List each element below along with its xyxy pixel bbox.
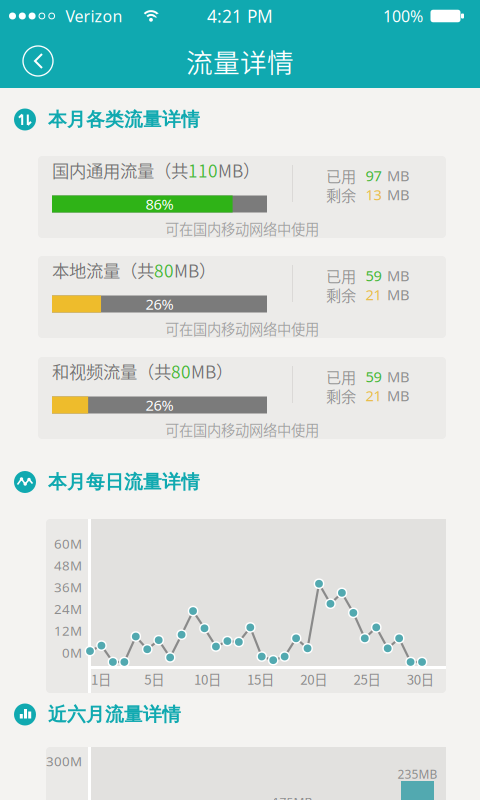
staticText: MB	[387, 285, 410, 304]
staticText: 国内通用流量（共	[52, 157, 188, 183]
staticText: 80	[171, 358, 191, 384]
staticText: 20日	[300, 669, 327, 689]
staticText: 13	[365, 185, 381, 204]
staticText: MB	[387, 367, 410, 386]
staticText: 和视频流量（共	[52, 358, 171, 384]
staticText: 26%	[145, 294, 173, 314]
staticText: 1日	[91, 669, 111, 689]
staticText: 175MB	[272, 794, 312, 800]
staticText: 本月每日流量详情	[48, 470, 200, 493]
staticText: 59	[365, 266, 381, 285]
staticText: MB）	[191, 358, 233, 384]
staticText: 25日	[353, 669, 380, 689]
staticText: 86%	[145, 194, 173, 214]
staticText: 21	[365, 285, 381, 304]
staticText: MB）	[218, 157, 260, 183]
staticText: 本地流量（共	[52, 257, 154, 283]
staticText: 300M	[46, 752, 82, 770]
staticText: 36M	[54, 578, 82, 596]
staticText: MB	[387, 166, 410, 185]
staticText: 已用	[326, 264, 356, 286]
staticText: MB	[387, 266, 410, 285]
staticText: 可在国内移动网络中使用	[165, 318, 319, 339]
staticText: 4:21 PM	[207, 4, 273, 27]
staticText: 5日	[144, 669, 164, 689]
staticText: 26%	[145, 395, 173, 415]
staticText: MB	[387, 185, 410, 204]
staticText: 15日	[247, 669, 274, 689]
staticText: 60M	[54, 535, 82, 552]
staticText: 30日	[407, 669, 434, 689]
staticText: 97	[365, 166, 381, 185]
staticText: 0M	[62, 644, 82, 661]
staticText: 可在国内移动网络中使用	[165, 419, 319, 440]
staticText: 已用	[326, 365, 356, 387]
staticText: 12M	[54, 622, 82, 639]
staticText: MB	[387, 386, 410, 405]
staticText: 已用	[326, 164, 356, 186]
staticText: 流量详情	[186, 42, 294, 80]
staticText: 剩余	[326, 183, 356, 205]
staticText: 24M	[54, 600, 82, 618]
staticText: 21	[365, 386, 381, 405]
staticText: Verizon	[65, 5, 122, 27]
staticText: 59	[365, 367, 381, 386]
staticText: MB）	[174, 257, 216, 283]
staticText: 80	[154, 257, 174, 283]
staticText: 可在国内移动网络中使用	[165, 218, 319, 239]
staticText: 近六月流量详情	[48, 703, 181, 726]
staticText: 100%	[383, 5, 423, 27]
staticText: 10日	[194, 669, 221, 689]
button[interactable]	[23, 46, 53, 76]
staticText: 剩余	[326, 283, 356, 305]
staticText: 本月各类流量详情	[48, 108, 200, 131]
staticText: 剩余	[326, 384, 356, 406]
staticText: 48M	[54, 556, 82, 574]
staticText: 110	[188, 157, 218, 183]
staticText: 235MB	[397, 766, 437, 782]
